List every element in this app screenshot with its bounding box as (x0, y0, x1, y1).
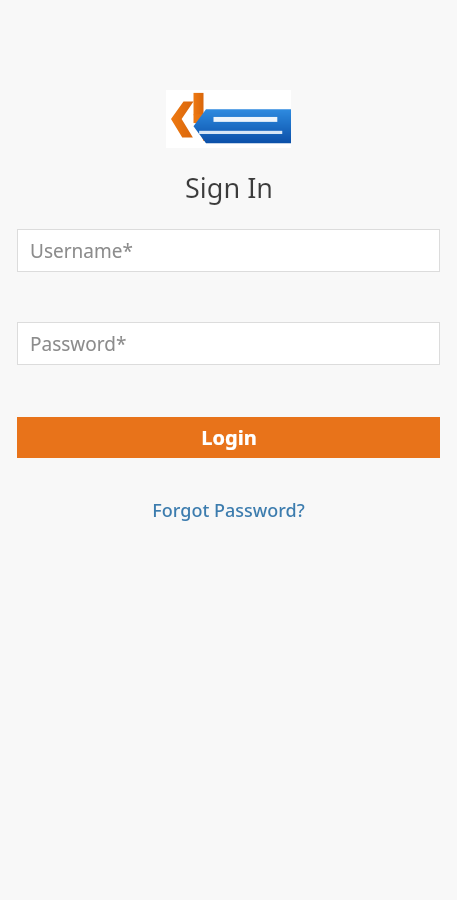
staticText: Forgot Password? (152, 498, 305, 523)
button[interactable]: Login (17, 417, 440, 458)
staticText: Login (201, 424, 257, 451)
staticText: Password* (30, 331, 127, 357)
staticText: Username* (30, 238, 133, 264)
button[interactable]: Username* (17, 229, 440, 272)
staticText: Sign In (185, 169, 273, 206)
button[interactable]: Forgot Password? (142, 494, 315, 527)
button[interactable]: Password* (17, 322, 440, 365)
